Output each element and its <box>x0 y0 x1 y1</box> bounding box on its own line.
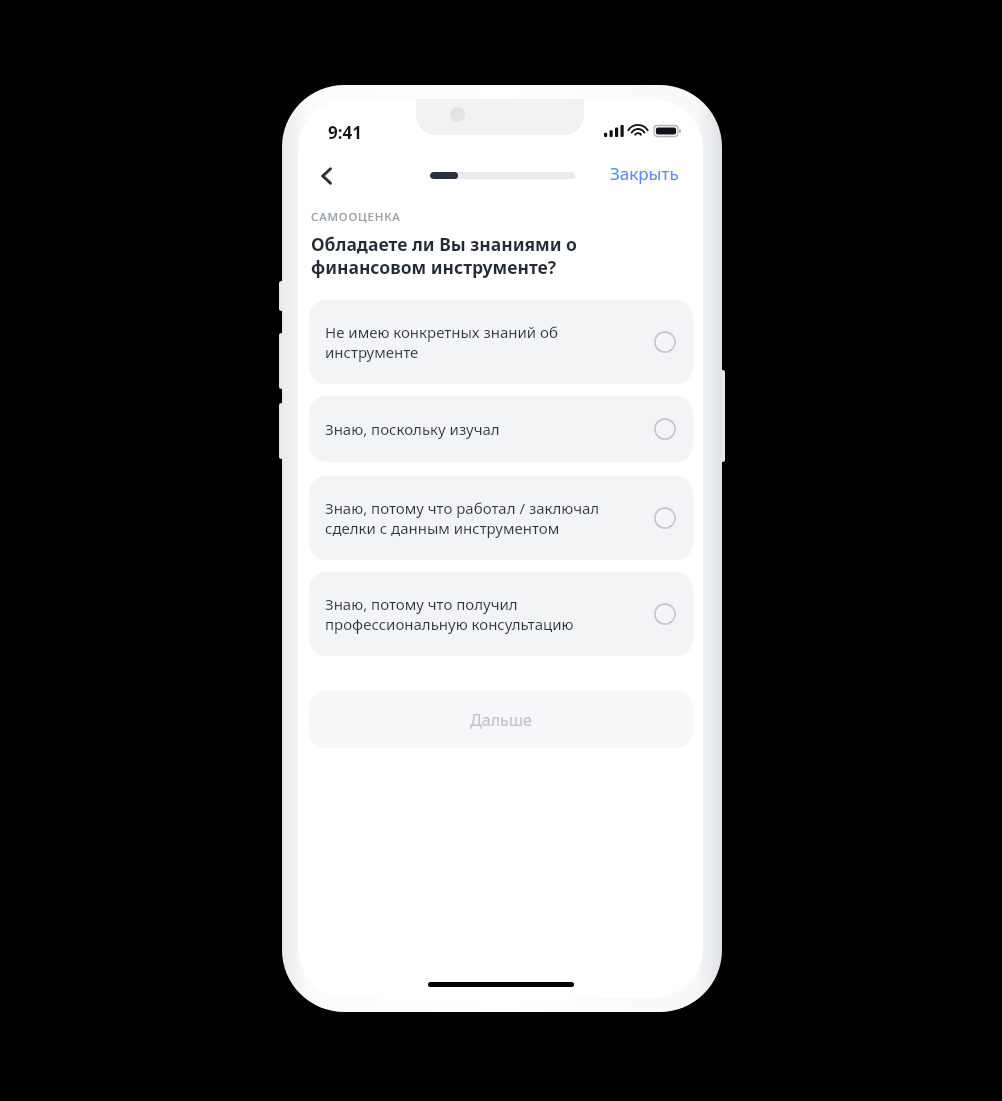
staticText: Знаю, потому что получил профессиональну… <box>325 594 642 634</box>
staticText: Дальше <box>470 709 532 731</box>
button[interactable]: Знаю, потому что работал / заключал сдел… <box>309 476 693 560</box>
staticText: Закрыть <box>610 162 679 185</box>
button[interactable]: Дальше <box>309 691 693 748</box>
staticText: Знаю, поскольку изучал <box>325 419 642 439</box>
staticText: Обладаете ли Вы знаниями о финансовом ин… <box>311 232 683 279</box>
button[interactable]: Не имею конкретных знаний об инструменте <box>309 300 693 384</box>
button[interactable]: Закрыть <box>604 157 685 190</box>
button[interactable]: Знаю, поскольку изучал <box>309 396 693 462</box>
button[interactable]: Back <box>304 153 350 199</box>
staticText: САМООЦЕНКА <box>311 209 401 225</box>
staticText: 9:41 <box>328 121 362 144</box>
button[interactable]: Знаю, потому что получил профессиональну… <box>309 572 693 656</box>
staticText: Не имею конкретных знаний об инструменте <box>325 322 642 362</box>
staticText: Знаю, потому что работал / заключал сдел… <box>325 498 642 538</box>
